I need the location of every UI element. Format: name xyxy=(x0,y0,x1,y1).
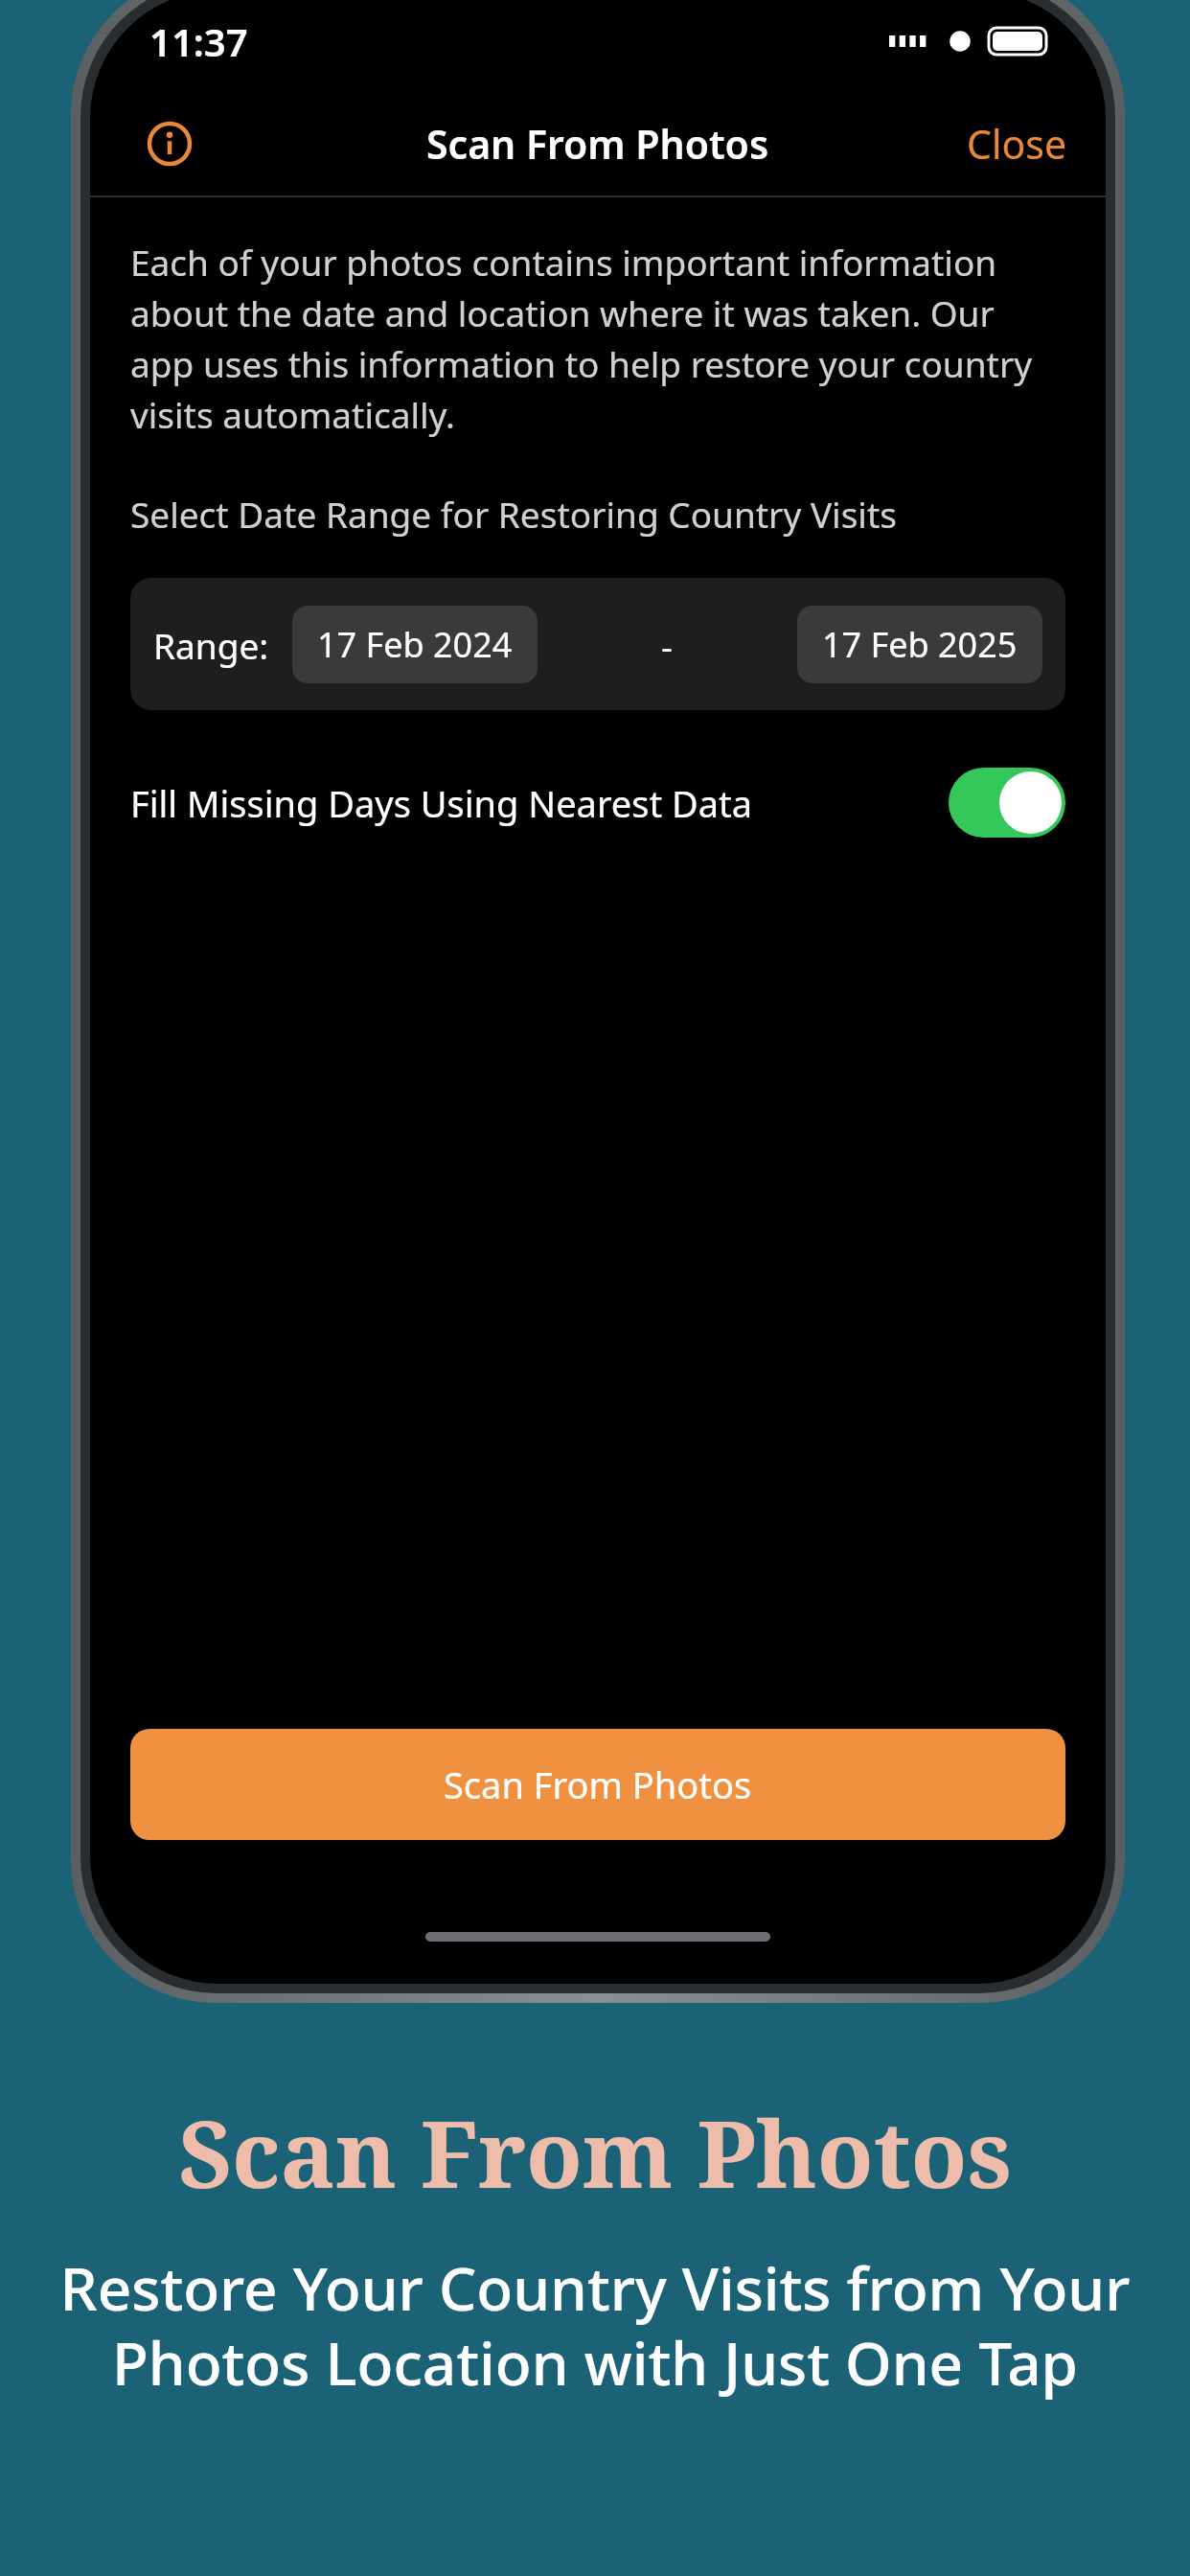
button[interactable]: 17 Feb 2025 xyxy=(797,606,1042,683)
button[interactable]: 17 Feb 2024 xyxy=(292,606,538,683)
staticText: - xyxy=(661,621,673,669)
button[interactable]: Fill Missing Days Using Nearest Data xyxy=(130,758,1065,847)
staticText: Fill Missing Days Using Nearest Data xyxy=(130,778,949,828)
staticText: Select Date Range for Restoring Country … xyxy=(130,490,897,538)
staticText: Each of your photos contains important i… xyxy=(130,238,1065,438)
staticText: 11:37 xyxy=(149,15,248,67)
staticText: Range: xyxy=(153,621,269,669)
staticText: Close xyxy=(967,117,1067,171)
button[interactable]: Scan From Photos xyxy=(130,1729,1065,1840)
button[interactable]: Range: xyxy=(130,578,1065,710)
staticText: 17 Feb 2024 xyxy=(317,621,513,668)
staticText: Scan From Photos xyxy=(178,2089,1012,2215)
staticText: Scan From Photos xyxy=(426,117,769,171)
staticText: Restore Your Country Visits from Your Ph… xyxy=(46,2247,1144,2403)
staticText: 17 Feb 2025 xyxy=(822,621,1018,668)
staticText: Scan From Photos xyxy=(444,1759,752,1809)
button[interactable]: Close xyxy=(928,100,1106,188)
other: Fill missing days toggle xyxy=(949,768,1065,838)
button[interactable]: Information xyxy=(128,103,211,185)
